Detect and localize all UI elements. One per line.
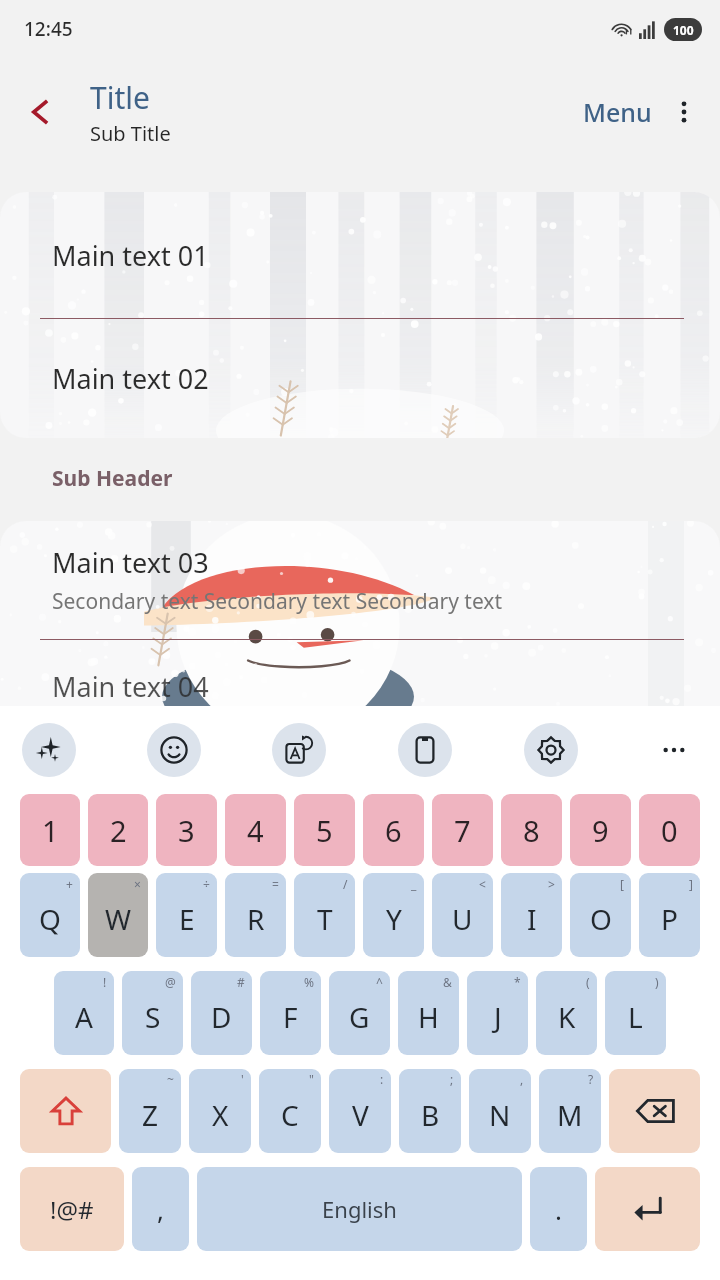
staticText: /: [343, 876, 348, 892]
button[interactable]: English: [197, 1167, 522, 1251]
staticText: +: [66, 876, 73, 892]
button[interactable]: 3: [156, 794, 217, 866]
button[interactable]: Main text 01: [0, 192, 720, 318]
button[interactable]: Menu: [575, 87, 660, 137]
staticText: 3: [178, 811, 195, 850]
button[interactable]: %: [260, 971, 321, 1055]
button[interactable]: Emoji: [147, 723, 201, 777]
staticText: 6: [385, 811, 402, 850]
button[interactable]: >: [501, 873, 562, 957]
button[interactable]: 0: [639, 794, 700, 866]
staticText: Sub Header: [52, 464, 173, 493]
staticText: =: [272, 876, 279, 892]
button[interactable]: Shift: [20, 1069, 111, 1153]
button[interactable]: Settings: [524, 723, 578, 777]
staticText: N: [489, 1096, 511, 1134]
button[interactable]: 6: [363, 794, 424, 866]
staticText: R: [247, 900, 265, 938]
staticText: Sub Title: [90, 120, 171, 147]
button[interactable]: &: [398, 971, 459, 1055]
staticText: 100: [673, 22, 694, 38]
button[interactable]: ×: [88, 873, 148, 957]
button[interactable]: ~: [119, 1069, 181, 1153]
staticText: 2: [110, 811, 127, 850]
button[interactable]: AI suggestions: [22, 723, 76, 777]
staticText: V: [352, 1096, 369, 1134]
staticText: :: [380, 1071, 384, 1087]
button[interactable]: ?: [539, 1069, 601, 1153]
staticText: _: [411, 876, 417, 892]
button[interactable]: 8: [501, 794, 562, 866]
staticText: (: [586, 974, 590, 990]
button[interactable]: +: [20, 873, 80, 957]
button[interactable]: #: [191, 971, 252, 1055]
staticText: ×: [134, 876, 141, 892]
staticText: .: [555, 1192, 562, 1227]
button[interactable]: ^: [329, 971, 390, 1055]
button[interactable]: ): [605, 971, 666, 1055]
button[interactable]: 5: [294, 794, 355, 866]
button[interactable]: @: [122, 971, 183, 1055]
staticText: P: [661, 900, 678, 938]
staticText: Main text 01: [52, 237, 209, 274]
staticText: O: [590, 900, 612, 938]
staticText: X: [212, 1096, 229, 1134]
button[interactable]: !@#: [20, 1167, 124, 1251]
staticText: 9: [592, 811, 609, 850]
staticText: C: [281, 1096, 299, 1134]
staticText: U: [452, 900, 473, 938]
button[interactable]: (: [536, 971, 597, 1055]
button[interactable]: Main text 02: [0, 319, 720, 438]
button[interactable]: Back: [14, 86, 66, 138]
button[interactable]: Translate: [272, 723, 326, 777]
staticText: I: [527, 900, 537, 938]
button[interactable]: More options: [660, 88, 708, 136]
button[interactable]: 7: [432, 794, 493, 866]
button[interactable]: ;: [399, 1069, 461, 1153]
button[interactable]: Clipboard: [398, 723, 452, 777]
staticText: ': [241, 1071, 244, 1087]
button[interactable]: 2: [88, 794, 148, 866]
staticText: %: [304, 974, 314, 990]
staticText: E: [179, 900, 195, 938]
staticText: 0: [661, 811, 678, 850]
button[interactable]: ,: [469, 1069, 531, 1153]
staticText: D: [211, 998, 232, 1036]
staticText: #: [237, 974, 245, 990]
button[interactable]: .: [530, 1167, 587, 1251]
staticText: M: [557, 1096, 583, 1134]
staticText: Main text 02: [52, 360, 209, 397]
button[interactable]: Enter: [595, 1167, 700, 1251]
button[interactable]: 1: [20, 794, 80, 866]
button[interactable]: ÷: [156, 873, 217, 957]
button[interactable]: _: [363, 873, 424, 957]
button[interactable]: ,: [132, 1167, 189, 1251]
staticText: 4: [247, 811, 264, 850]
button[interactable]: =: [225, 873, 286, 957]
staticText: Z: [142, 1096, 159, 1134]
button[interactable]: ]: [639, 873, 700, 957]
button[interactable]: [: [570, 873, 631, 957]
button[interactable]: /: [294, 873, 355, 957]
staticText: F: [283, 998, 298, 1036]
staticText: ÷: [203, 876, 210, 892]
button[interactable]: <: [432, 873, 493, 957]
button[interactable]: !: [54, 971, 114, 1055]
button[interactable]: ": [259, 1069, 321, 1153]
staticText: ~: [167, 1071, 174, 1087]
staticText: 7: [454, 811, 471, 850]
button[interactable]: Backspace: [609, 1069, 700, 1153]
button[interactable]: 9: [570, 794, 631, 866]
staticText: &: [443, 974, 452, 990]
button[interactable]: 4: [225, 794, 286, 866]
button[interactable]: ': [189, 1069, 251, 1153]
staticText: L: [628, 998, 643, 1036]
staticText: !: [103, 974, 107, 990]
button[interactable]: More keyboard options: [650, 726, 698, 774]
staticText: G: [349, 998, 370, 1036]
button[interactable]: Main text 03: [0, 521, 720, 639]
button[interactable]: Main text 04: [0, 640, 720, 706]
button[interactable]: *: [467, 971, 528, 1055]
button[interactable]: :: [329, 1069, 391, 1153]
staticText: Q: [39, 900, 61, 938]
